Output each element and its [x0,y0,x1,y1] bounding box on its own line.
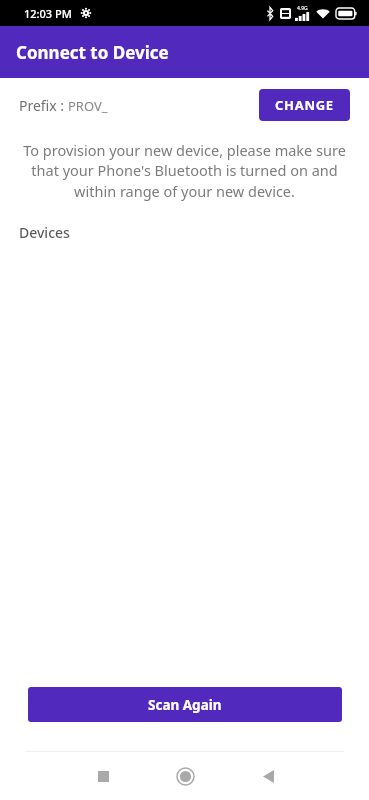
staticText: CHANGE [275,96,334,114]
button[interactable]: Home [164,755,206,797]
staticText: Prefix : [19,96,68,115]
staticText: Scan Again [148,696,222,714]
staticText: To provision your new device, please mak… [18,140,351,202]
staticText: PROV_ [68,97,108,115]
staticText: 12:03 PM [24,6,72,21]
button[interactable]: Recents [82,755,124,797]
staticText: Connect to Device [16,41,169,64]
staticText: Devices [19,223,70,242]
button[interactable]: Back [247,755,289,797]
button[interactable]: Scan Again [28,687,342,722]
button[interactable]: CHANGE [259,89,350,121]
staticText: 4.9G [297,5,308,12]
